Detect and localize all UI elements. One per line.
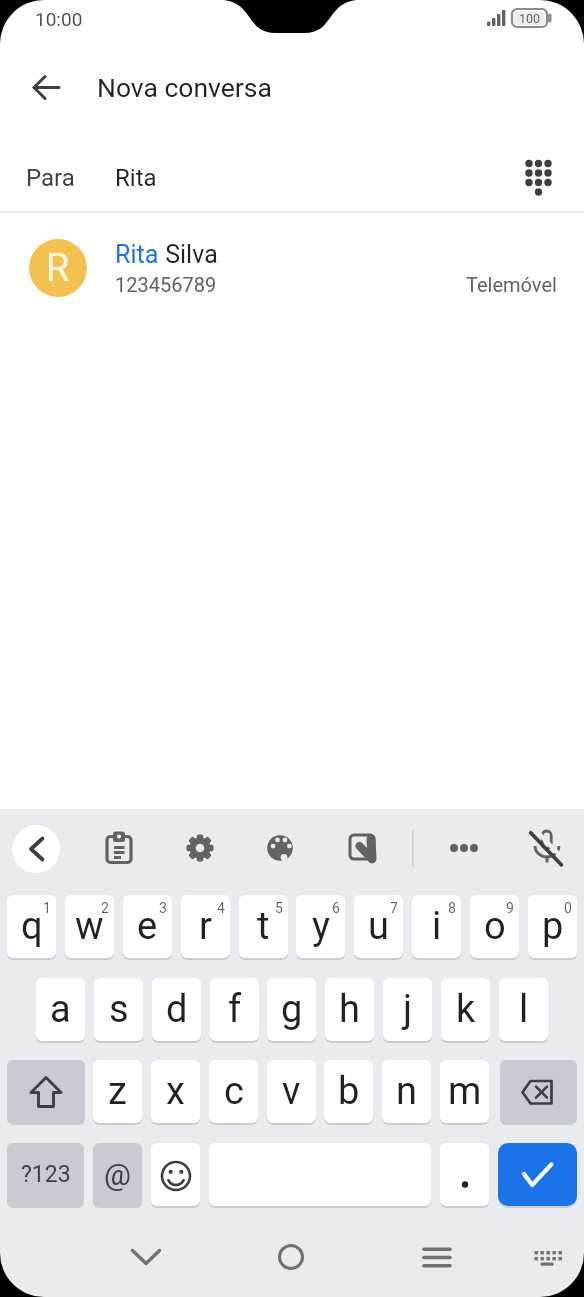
staticText: ?123 xyxy=(21,1161,71,1188)
button[interactable]: w xyxy=(65,895,114,958)
staticText: o xyxy=(484,904,506,949)
button[interactable]: u xyxy=(354,895,403,958)
staticText: n xyxy=(396,1069,417,1114)
staticText: u xyxy=(368,904,389,949)
staticText: f xyxy=(228,987,242,1032)
staticText: 4 xyxy=(217,900,225,916)
button[interactable] xyxy=(413,1233,461,1281)
staticText: t xyxy=(257,904,270,949)
staticText: Rita xyxy=(115,240,159,269)
button[interactable] xyxy=(7,1060,85,1123)
staticText: s xyxy=(109,987,129,1032)
staticText: Nova conversa xyxy=(97,72,272,103)
button[interactable]: ?123 xyxy=(7,1143,84,1206)
staticText: p xyxy=(542,904,564,949)
staticText: y xyxy=(312,904,330,949)
staticText: g xyxy=(281,987,303,1032)
staticText: Rita xyxy=(115,164,157,192)
button[interactable]: n xyxy=(382,1060,431,1123)
staticText: i xyxy=(432,904,442,949)
button[interactable]: f xyxy=(210,978,259,1041)
button[interactable]: b xyxy=(324,1060,373,1123)
staticText: a xyxy=(50,987,71,1032)
button[interactable]: y xyxy=(296,895,345,958)
staticText: z xyxy=(108,1069,127,1114)
button[interactable] xyxy=(523,1233,571,1281)
staticText: 3 xyxy=(159,900,167,916)
button[interactable]: c xyxy=(209,1060,258,1123)
button[interactable] xyxy=(440,824,488,872)
staticText: h xyxy=(339,987,360,1032)
button[interactable]: v xyxy=(267,1060,316,1123)
button[interactable] xyxy=(95,825,143,873)
button[interactable]: h xyxy=(325,978,374,1041)
staticText: Silva xyxy=(159,240,218,269)
staticText: e xyxy=(137,904,158,949)
staticText: Para xyxy=(26,164,75,192)
button[interactable]: R xyxy=(0,224,584,310)
button[interactable]: m xyxy=(440,1060,489,1123)
button[interactable]: o xyxy=(470,895,519,958)
button[interactable]: i xyxy=(412,895,461,958)
staticText: 7 xyxy=(390,900,398,916)
staticText: 1 xyxy=(43,900,51,916)
staticText: R xyxy=(46,246,70,291)
button[interactable]: l xyxy=(499,978,548,1041)
staticText: k xyxy=(456,987,476,1032)
staticText: x xyxy=(166,1069,185,1114)
staticText: 0 xyxy=(564,900,572,916)
button[interactable] xyxy=(13,63,61,111)
button[interactable]: a xyxy=(36,978,85,1041)
button[interactable] xyxy=(500,1060,577,1123)
staticText: 2 xyxy=(101,900,109,916)
staticText: 8 xyxy=(448,900,456,916)
button[interactable]: q xyxy=(7,895,56,958)
button[interactable]: t xyxy=(239,895,288,958)
button[interactable]: z xyxy=(93,1060,142,1123)
button[interactable]: e xyxy=(123,895,172,958)
staticText: v xyxy=(282,1069,301,1114)
button[interactable] xyxy=(267,1233,315,1281)
button[interactable] xyxy=(440,1143,489,1206)
button[interactable] xyxy=(523,824,571,872)
button[interactable]: s xyxy=(94,978,143,1041)
button[interactable]: r xyxy=(181,895,230,958)
button[interactable] xyxy=(122,1233,170,1281)
staticText: l xyxy=(519,987,529,1032)
staticText: 6 xyxy=(332,900,340,916)
button[interactable] xyxy=(498,1143,577,1206)
staticText: 5 xyxy=(275,900,283,916)
button[interactable]: @ xyxy=(93,1143,142,1206)
staticText: q xyxy=(21,904,43,949)
staticText: r xyxy=(199,904,212,949)
staticText: 123456789 xyxy=(115,273,217,296)
staticText: Telemóvel xyxy=(466,273,557,296)
button[interactable]: d xyxy=(152,978,201,1041)
button[interactable] xyxy=(340,824,388,872)
staticText: c xyxy=(224,1069,244,1114)
staticText: 100 xyxy=(519,11,541,26)
button[interactable] xyxy=(514,153,562,201)
button[interactable] xyxy=(151,1143,200,1206)
staticText: b xyxy=(338,1069,360,1114)
staticText: m xyxy=(448,1069,482,1114)
button[interactable]: j xyxy=(383,978,432,1041)
staticText: d xyxy=(166,987,188,1032)
button[interactable] xyxy=(12,825,60,873)
button[interactable] xyxy=(256,824,304,872)
staticText: @ xyxy=(104,1157,131,1192)
staticText: 10:00 xyxy=(35,8,83,30)
staticText: j xyxy=(403,987,413,1032)
button[interactable] xyxy=(176,824,224,872)
button[interactable]: g xyxy=(267,978,316,1041)
button[interactable]: x xyxy=(151,1060,200,1123)
staticText: w xyxy=(75,904,104,949)
button[interactable]: k xyxy=(441,978,490,1041)
staticText: 9 xyxy=(506,900,514,916)
button[interactable]: p xyxy=(528,895,577,958)
